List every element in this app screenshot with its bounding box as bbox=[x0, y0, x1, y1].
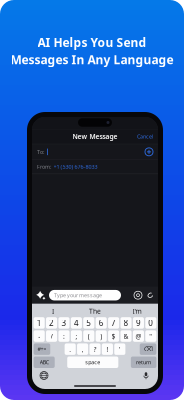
staticText: - bbox=[38, 332, 40, 340]
staticText: 6 bbox=[99, 318, 104, 328]
staticText: New Message bbox=[72, 132, 117, 141]
button[interactable]: 8 bbox=[120, 317, 132, 329]
staticText: : bbox=[63, 332, 65, 340]
button[interactable]: 6 bbox=[96, 317, 107, 329]
button[interactable]: 5 bbox=[83, 317, 94, 329]
staticText: 3 bbox=[61, 318, 66, 328]
button[interactable]: " bbox=[145, 330, 156, 342]
button[interactable]: 2 bbox=[46, 317, 57, 329]
button[interactable]: , bbox=[77, 343, 88, 355]
staticText: From: bbox=[37, 163, 51, 170]
button[interactable]: ; bbox=[71, 330, 82, 342]
staticText: I bbox=[52, 307, 54, 316]
button[interactable]: ) bbox=[96, 330, 107, 342]
staticText: space bbox=[85, 359, 100, 366]
staticText: Cancel bbox=[137, 133, 153, 140]
button[interactable]: Add contact bbox=[145, 148, 158, 156]
button[interactable]: 4 bbox=[71, 317, 82, 329]
button[interactable]: Dictate bbox=[140, 369, 152, 381]
button[interactable]: ABC bbox=[34, 356, 55, 368]
button[interactable]: $ bbox=[108, 330, 119, 342]
staticText: 9 bbox=[136, 318, 141, 328]
button[interactable]: 0 bbox=[145, 317, 156, 329]
staticText: The bbox=[89, 307, 101, 316]
staticText: ABC bbox=[40, 359, 49, 366]
button[interactable]: ' bbox=[114, 343, 125, 355]
staticText: Type your message bbox=[54, 292, 102, 299]
staticText: ; bbox=[75, 332, 77, 340]
staticText: 8 bbox=[123, 318, 128, 328]
staticText: 1 bbox=[37, 318, 42, 328]
staticText: 4 bbox=[74, 318, 79, 328]
staticText: " bbox=[149, 332, 152, 340]
button[interactable]: Type your message bbox=[45, 290, 121, 300]
staticText: AI Helps You Send bbox=[37, 34, 146, 50]
staticText: I'm bbox=[132, 307, 141, 316]
staticText: ? bbox=[93, 345, 96, 354]
staticText: ) bbox=[100, 332, 102, 340]
button[interactable]: #+= bbox=[34, 343, 50, 355]
staticText: 2 bbox=[49, 318, 54, 328]
button[interactable]: space bbox=[67, 356, 118, 368]
staticText: 7 bbox=[111, 318, 116, 328]
button[interactable]: Switch keyboard bbox=[38, 369, 50, 381]
button[interactable]: return bbox=[131, 356, 156, 368]
staticText: ' bbox=[119, 345, 121, 354]
button[interactable]: 7 bbox=[108, 317, 119, 329]
button[interactable]: ! bbox=[102, 343, 113, 355]
button[interactable]: @ bbox=[133, 330, 144, 342]
staticText: 0 bbox=[148, 318, 153, 328]
staticText: $ bbox=[112, 332, 116, 340]
staticText: ! bbox=[106, 345, 108, 354]
button[interactable]: ⌫ bbox=[140, 343, 156, 355]
staticText: +1 (530) 676-8033 bbox=[53, 163, 97, 170]
staticText: 5 bbox=[86, 318, 91, 328]
staticText: #+= bbox=[37, 346, 46, 353]
button[interactable]: : bbox=[58, 330, 69, 342]
staticText: Messages In Any Language bbox=[10, 52, 173, 68]
staticText: ⌫ bbox=[144, 345, 153, 353]
staticText: , bbox=[82, 345, 84, 354]
button[interactable]: / bbox=[46, 330, 57, 342]
button[interactable]: ( bbox=[83, 330, 94, 342]
staticText: To: bbox=[37, 148, 44, 155]
button[interactable]: 3 bbox=[58, 317, 69, 329]
button[interactable]: 1 bbox=[34, 317, 45, 329]
button[interactable]: Attach bbox=[142, 291, 158, 299]
staticText: @ bbox=[135, 332, 141, 340]
button[interactable]: . bbox=[65, 343, 76, 355]
staticText: & bbox=[123, 332, 128, 340]
button[interactable]: Camera bbox=[134, 291, 142, 299]
button[interactable]: 9 bbox=[133, 317, 144, 329]
button[interactable]: & bbox=[120, 330, 132, 342]
staticText: / bbox=[51, 332, 53, 340]
button[interactable]: ? bbox=[89, 343, 100, 355]
staticText: ( bbox=[88, 332, 90, 340]
staticText: . bbox=[69, 345, 71, 354]
button[interactable]: Cancel bbox=[137, 133, 158, 140]
staticText: return bbox=[136, 359, 151, 366]
button[interactable]: - bbox=[34, 330, 45, 342]
button[interactable]: AI assist bbox=[32, 291, 45, 300]
